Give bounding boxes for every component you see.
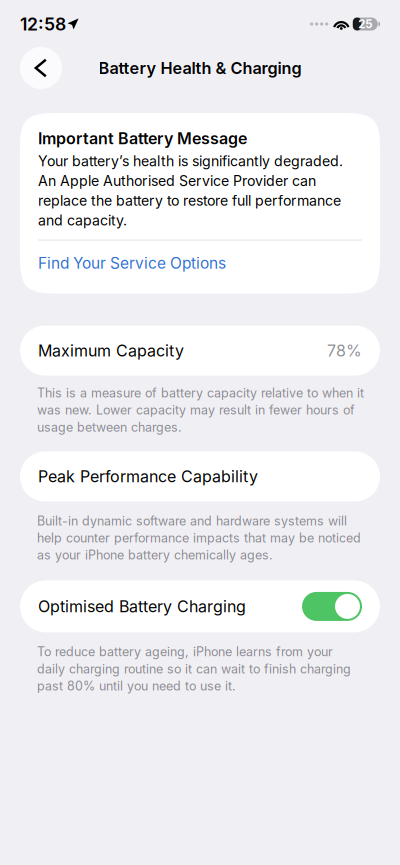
button[interactable]: Back (20, 47, 62, 89)
staticText: Important Battery Message (38, 129, 247, 148)
staticText: Optimised Battery Charging (38, 597, 246, 616)
button[interactable]: Optimised Battery Charging (302, 592, 362, 621)
staticText: 25 (358, 17, 372, 31)
staticText: To reduce battery ageing, iPhone learns … (37, 644, 351, 693)
staticText: 12:58 (20, 14, 66, 34)
staticText: Peak Performance Capability (38, 467, 258, 486)
staticText: Maximum Capacity (38, 341, 184, 360)
staticText: Battery Health & Charging (98, 58, 301, 78)
staticText: Built-in dynamic software and hardware s… (37, 513, 361, 562)
button[interactable]: Find Your Service Options (38, 241, 362, 294)
staticText: 78% (327, 341, 362, 360)
staticText: This is a measure of battery capacity re… (37, 386, 364, 434)
staticText: Find Your Service Options (38, 254, 226, 272)
staticText: Your battery’s health is significantly d… (38, 153, 343, 229)
